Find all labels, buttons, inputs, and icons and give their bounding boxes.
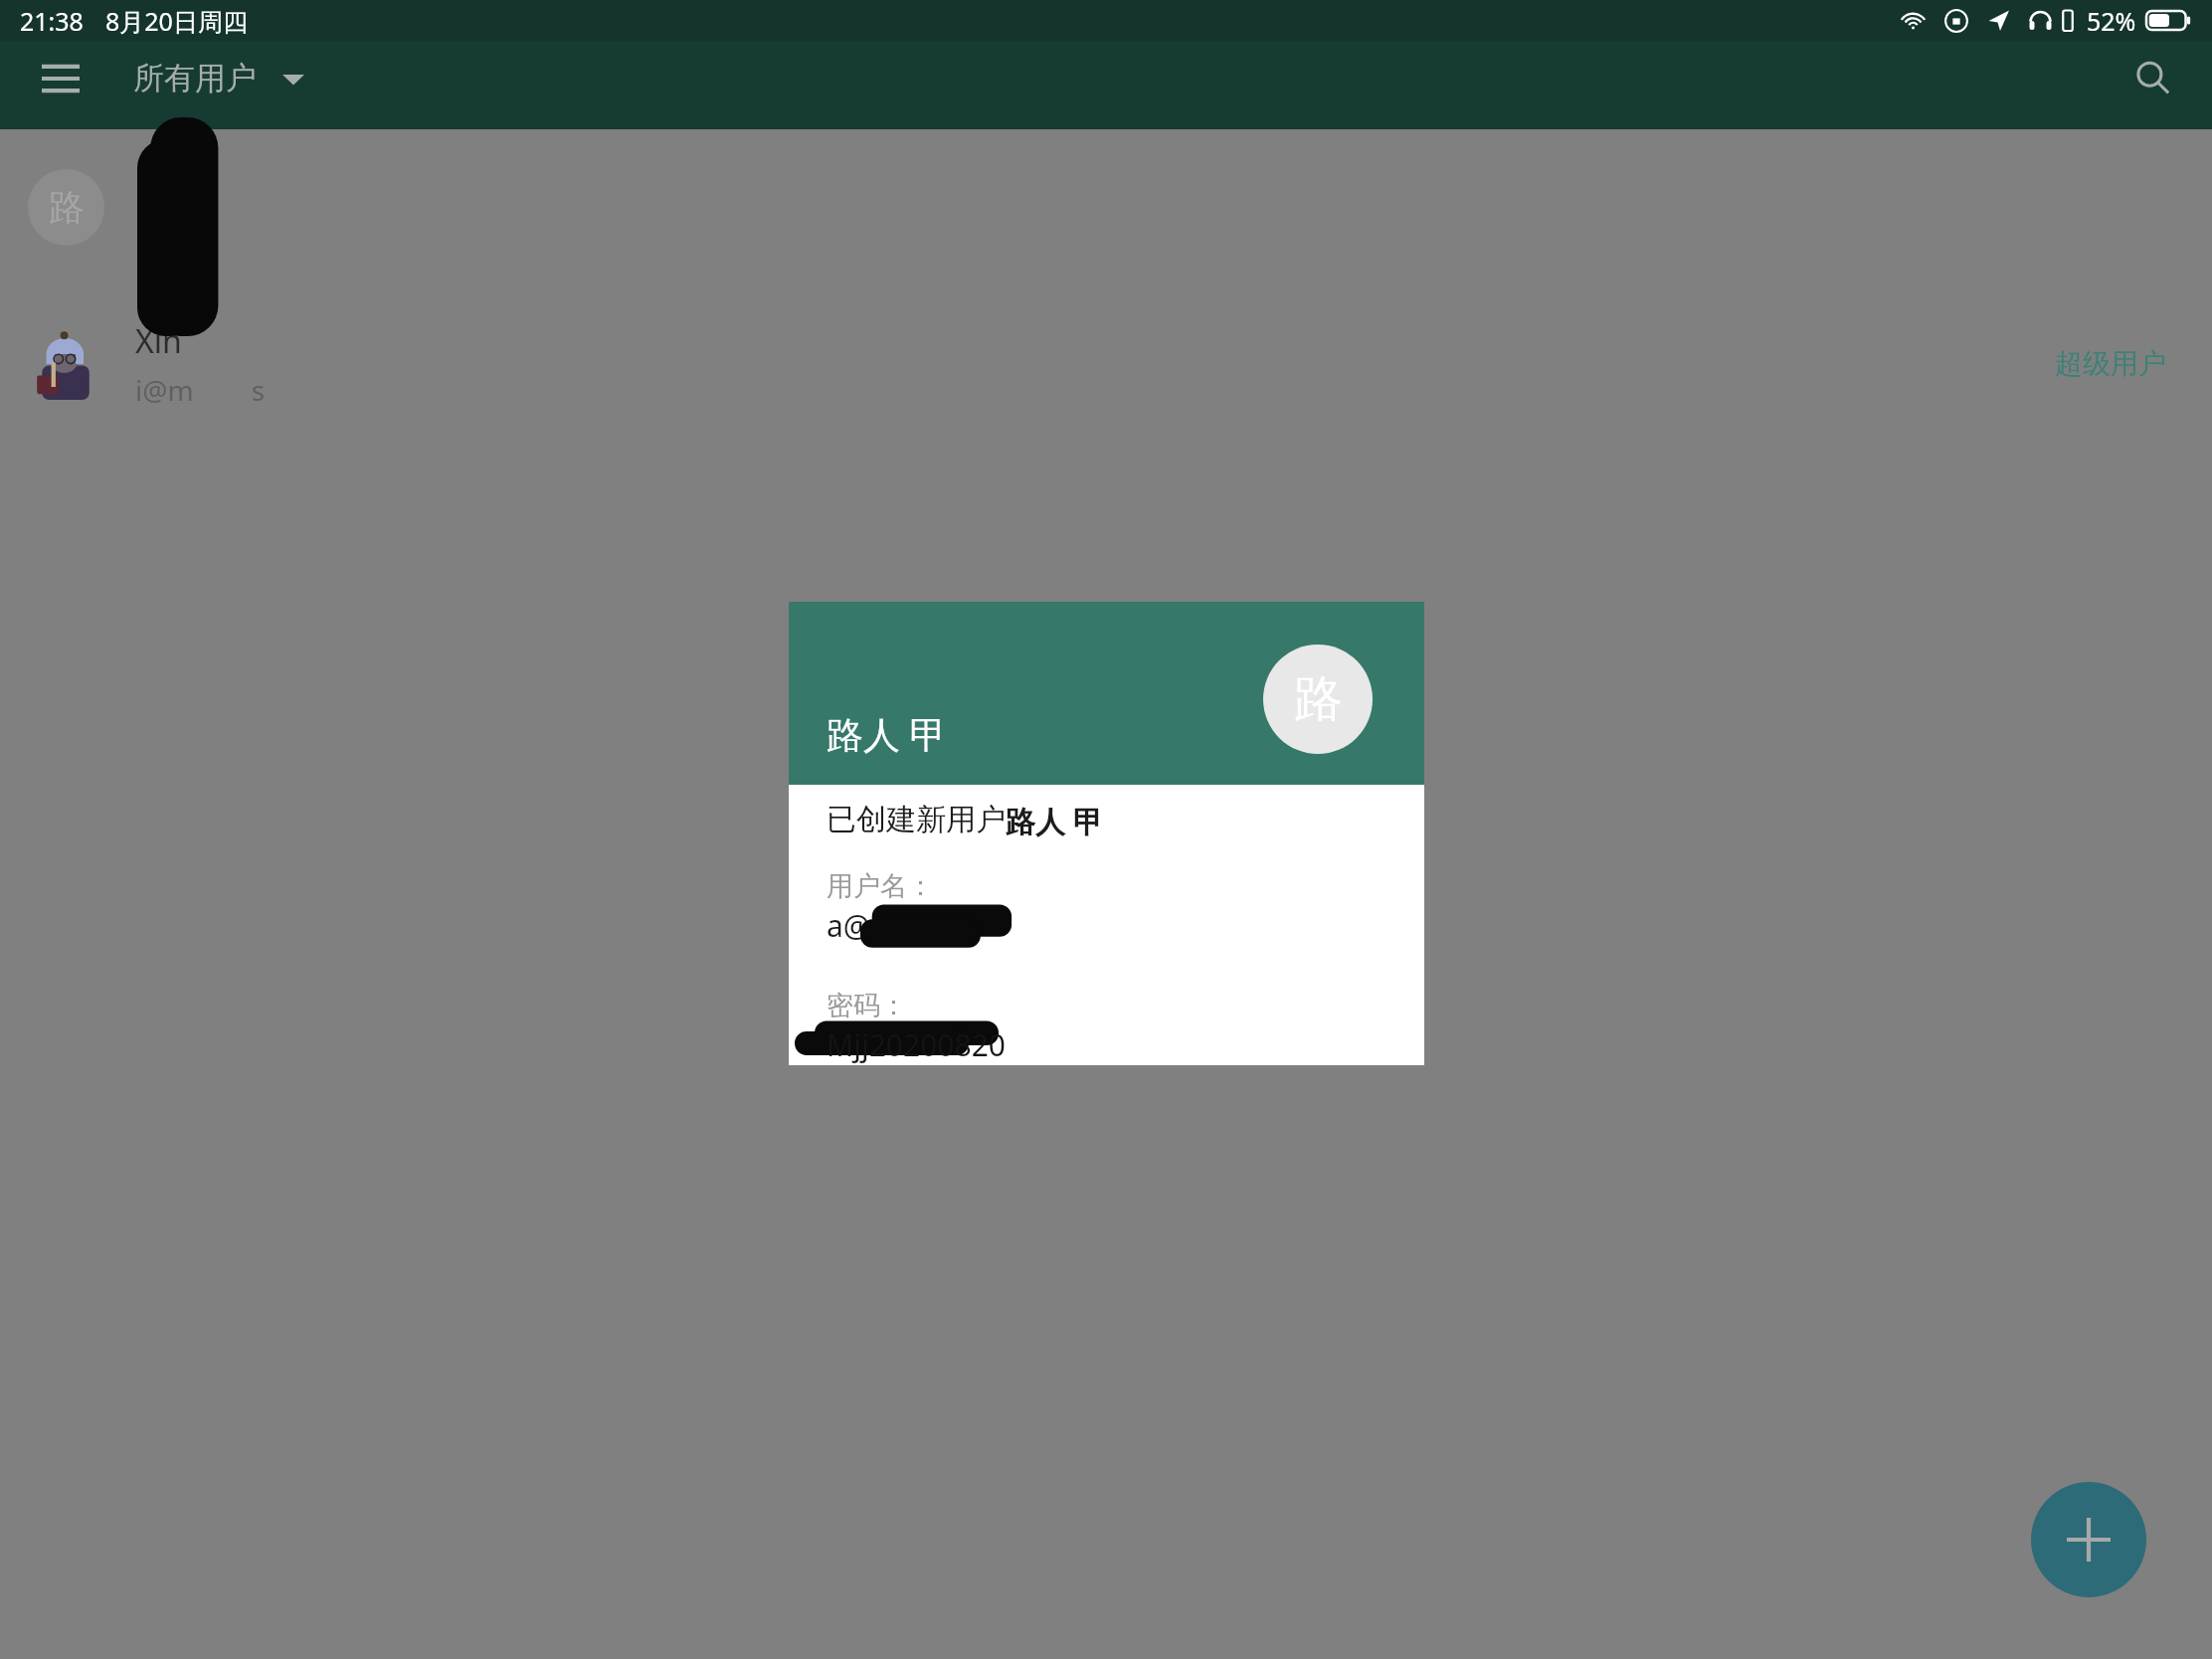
button[interactable]: 路 xyxy=(0,129,2212,285)
staticText: 超级用户 xyxy=(2055,346,2166,381)
staticText: 8月20日周四 xyxy=(105,4,248,38)
button[interactable]: Open navigation drawer xyxy=(24,42,97,115)
staticText: i@m s xyxy=(135,371,266,409)
staticText: 已创建新用户 xyxy=(827,801,1006,838)
staticText: 路 xyxy=(1294,668,1343,730)
staticText: Mjj20200820 xyxy=(827,1024,1006,1065)
staticText: 路人 甲 xyxy=(827,708,947,759)
staticText: 21:38 xyxy=(20,4,84,38)
staticText: Xin xyxy=(135,319,182,363)
staticText: 路人 甲 xyxy=(1006,801,1103,841)
button[interactable]: Xin xyxy=(0,285,2212,442)
staticText: a@m xyxy=(827,905,898,946)
staticText: 路 xyxy=(49,185,85,230)
staticText: 用户名： xyxy=(827,869,934,903)
button[interactable]: 所有用户 xyxy=(127,49,310,107)
staticText: 所有用户 xyxy=(133,59,257,97)
staticText: 密码： xyxy=(827,989,907,1022)
button[interactable]: Add user xyxy=(2031,1482,2146,1597)
staticText: 52% xyxy=(2087,4,2136,38)
button[interactable]: Search xyxy=(2115,40,2192,117)
